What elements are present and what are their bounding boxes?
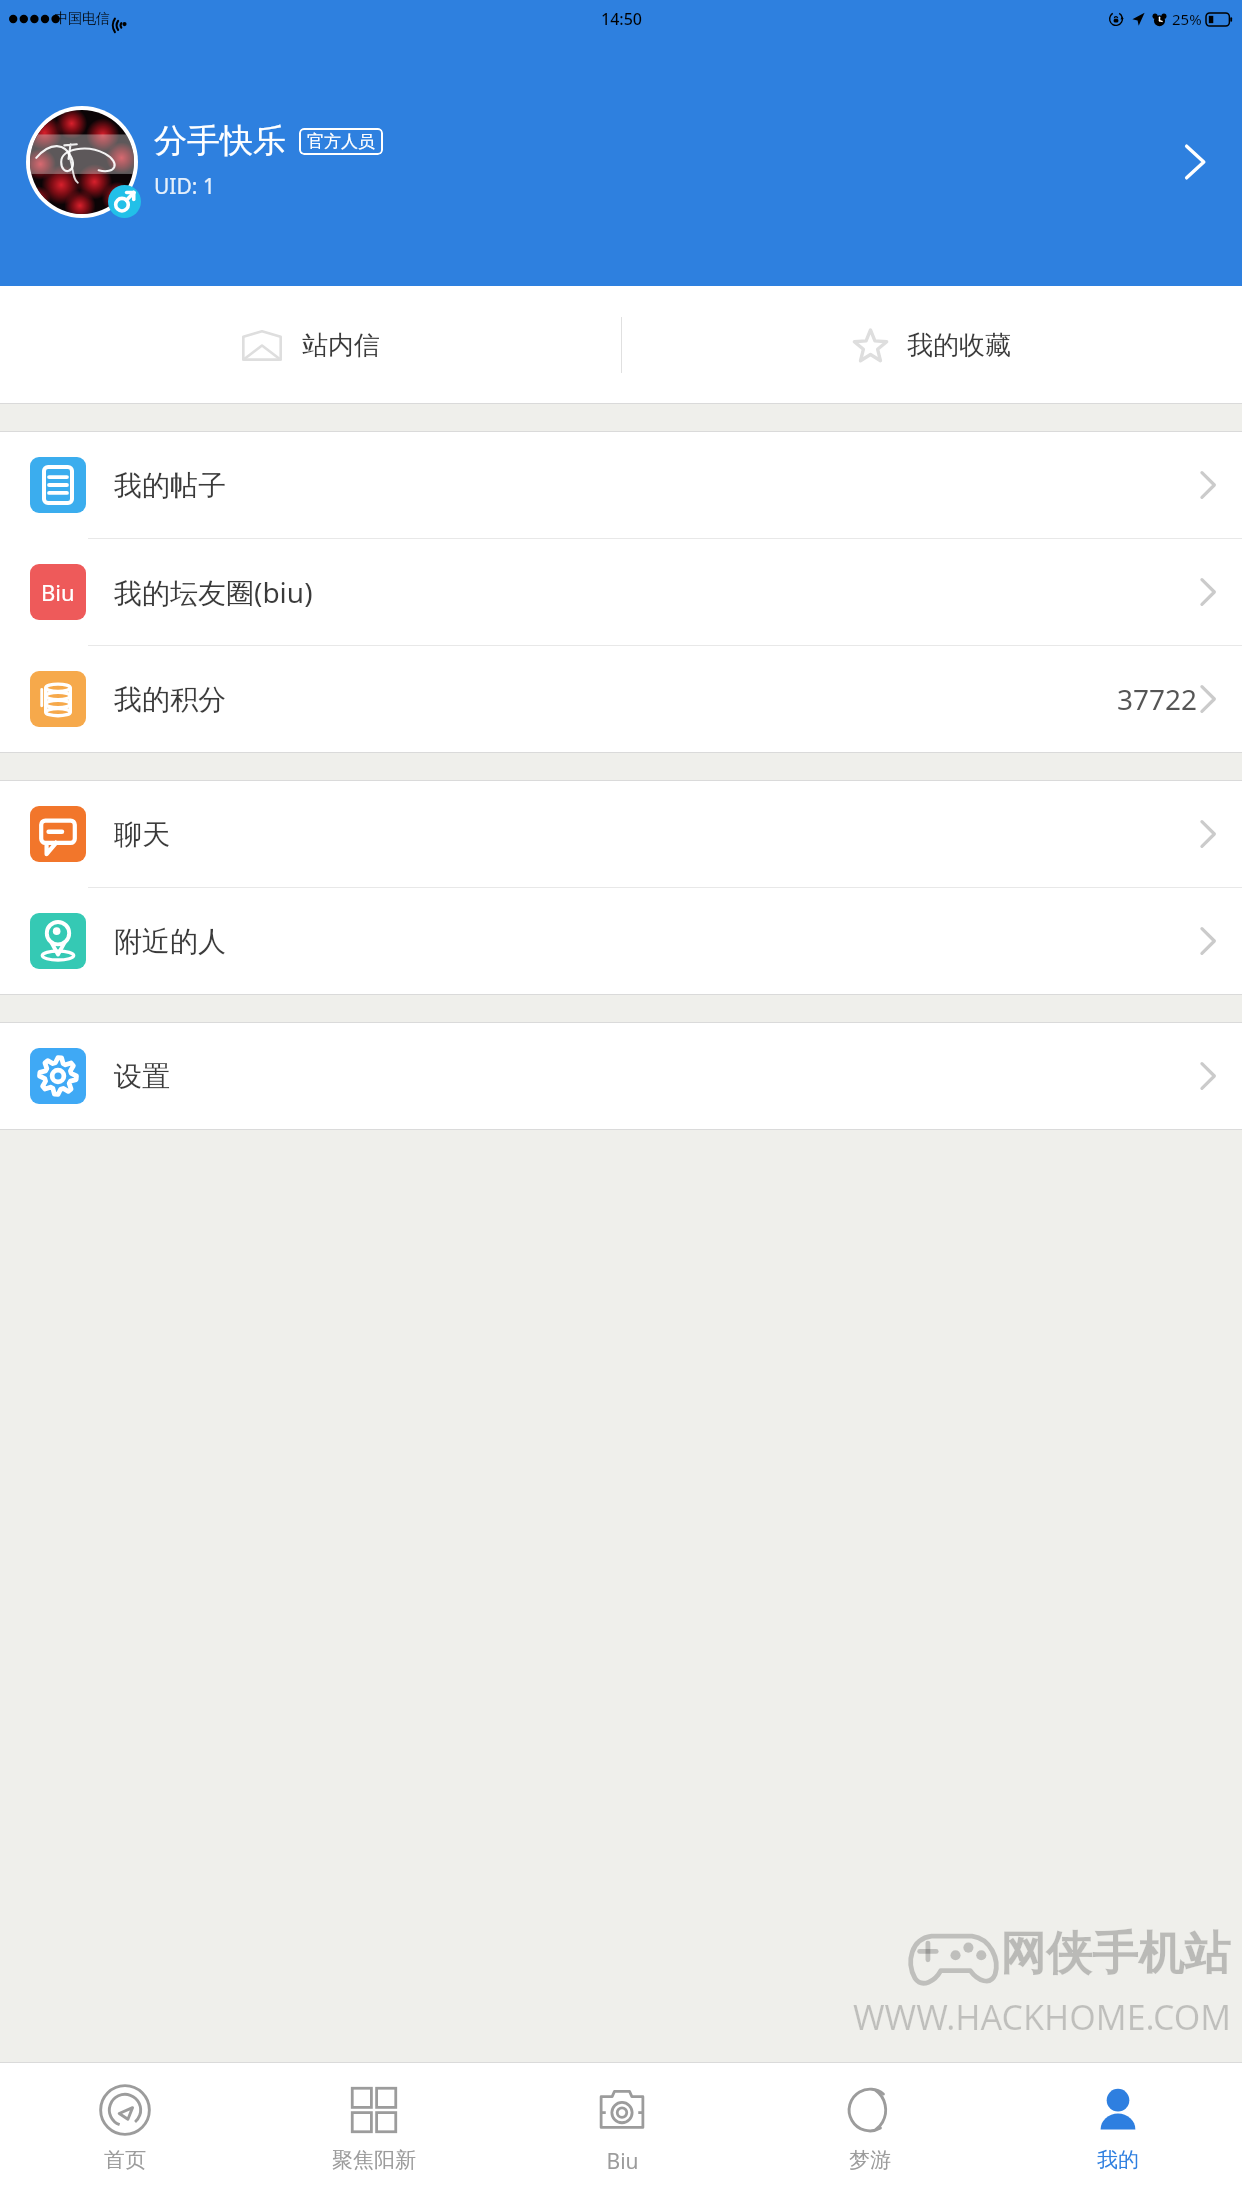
staticText: 25% [1172,9,1202,29]
button[interactable]: 我的 [994,2063,1242,2208]
staticText: 37722 [1117,680,1198,718]
staticText: 附近的人 [114,924,226,959]
staticText: WWW.HACKHOME.COM [853,1994,1232,2040]
button[interactable]: 首页 [0,2063,249,2208]
staticText: 聊天 [114,817,170,852]
staticText: 我的积分 [114,682,226,717]
button[interactable]: 我的收藏 [621,286,1242,404]
staticText: 我的坛友圈(biu) [114,573,313,611]
button[interactable]: 附近的人 [0,888,1242,994]
staticText: 我的 [1097,2147,1139,2173]
staticText: 聚焦阳新 [332,2147,416,2173]
button[interactable]: Biu [498,2063,746,2208]
staticText: 官方人员 [307,131,375,152]
button[interactable]: 站内信 [0,286,621,404]
button[interactable]: 聊天 [0,781,1242,887]
button[interactable]: 分手快乐 [0,38,1242,286]
button[interactable]: 设置 [0,1023,1242,1129]
staticText: 分手快乐 [154,120,286,162]
staticText: 首页 [104,2147,146,2173]
button[interactable]: Biu [0,539,1242,645]
staticText: Biu [41,577,75,607]
staticText: 我的帖子 [114,468,226,503]
staticText: 梦游 [849,2147,891,2173]
staticText: Biu [606,2147,639,2176]
staticText: 网侠手机站 [1000,1925,1230,1983]
button[interactable]: 梦游 [746,2063,994,2208]
staticText: UID: 1 [154,172,215,201]
other: Open profile [1184,144,1206,180]
button[interactable]: 我的积分 [0,646,1242,752]
staticText: 我的收藏 [907,329,1011,362]
button[interactable]: 聚焦阳新 [249,2063,498,2208]
staticText: 14:50 [601,8,642,30]
staticText: 中国电信 [54,10,110,28]
staticText: 设置 [114,1059,170,1094]
button[interactable]: 我的帖子 [0,432,1242,538]
staticText: 站内信 [302,329,380,362]
